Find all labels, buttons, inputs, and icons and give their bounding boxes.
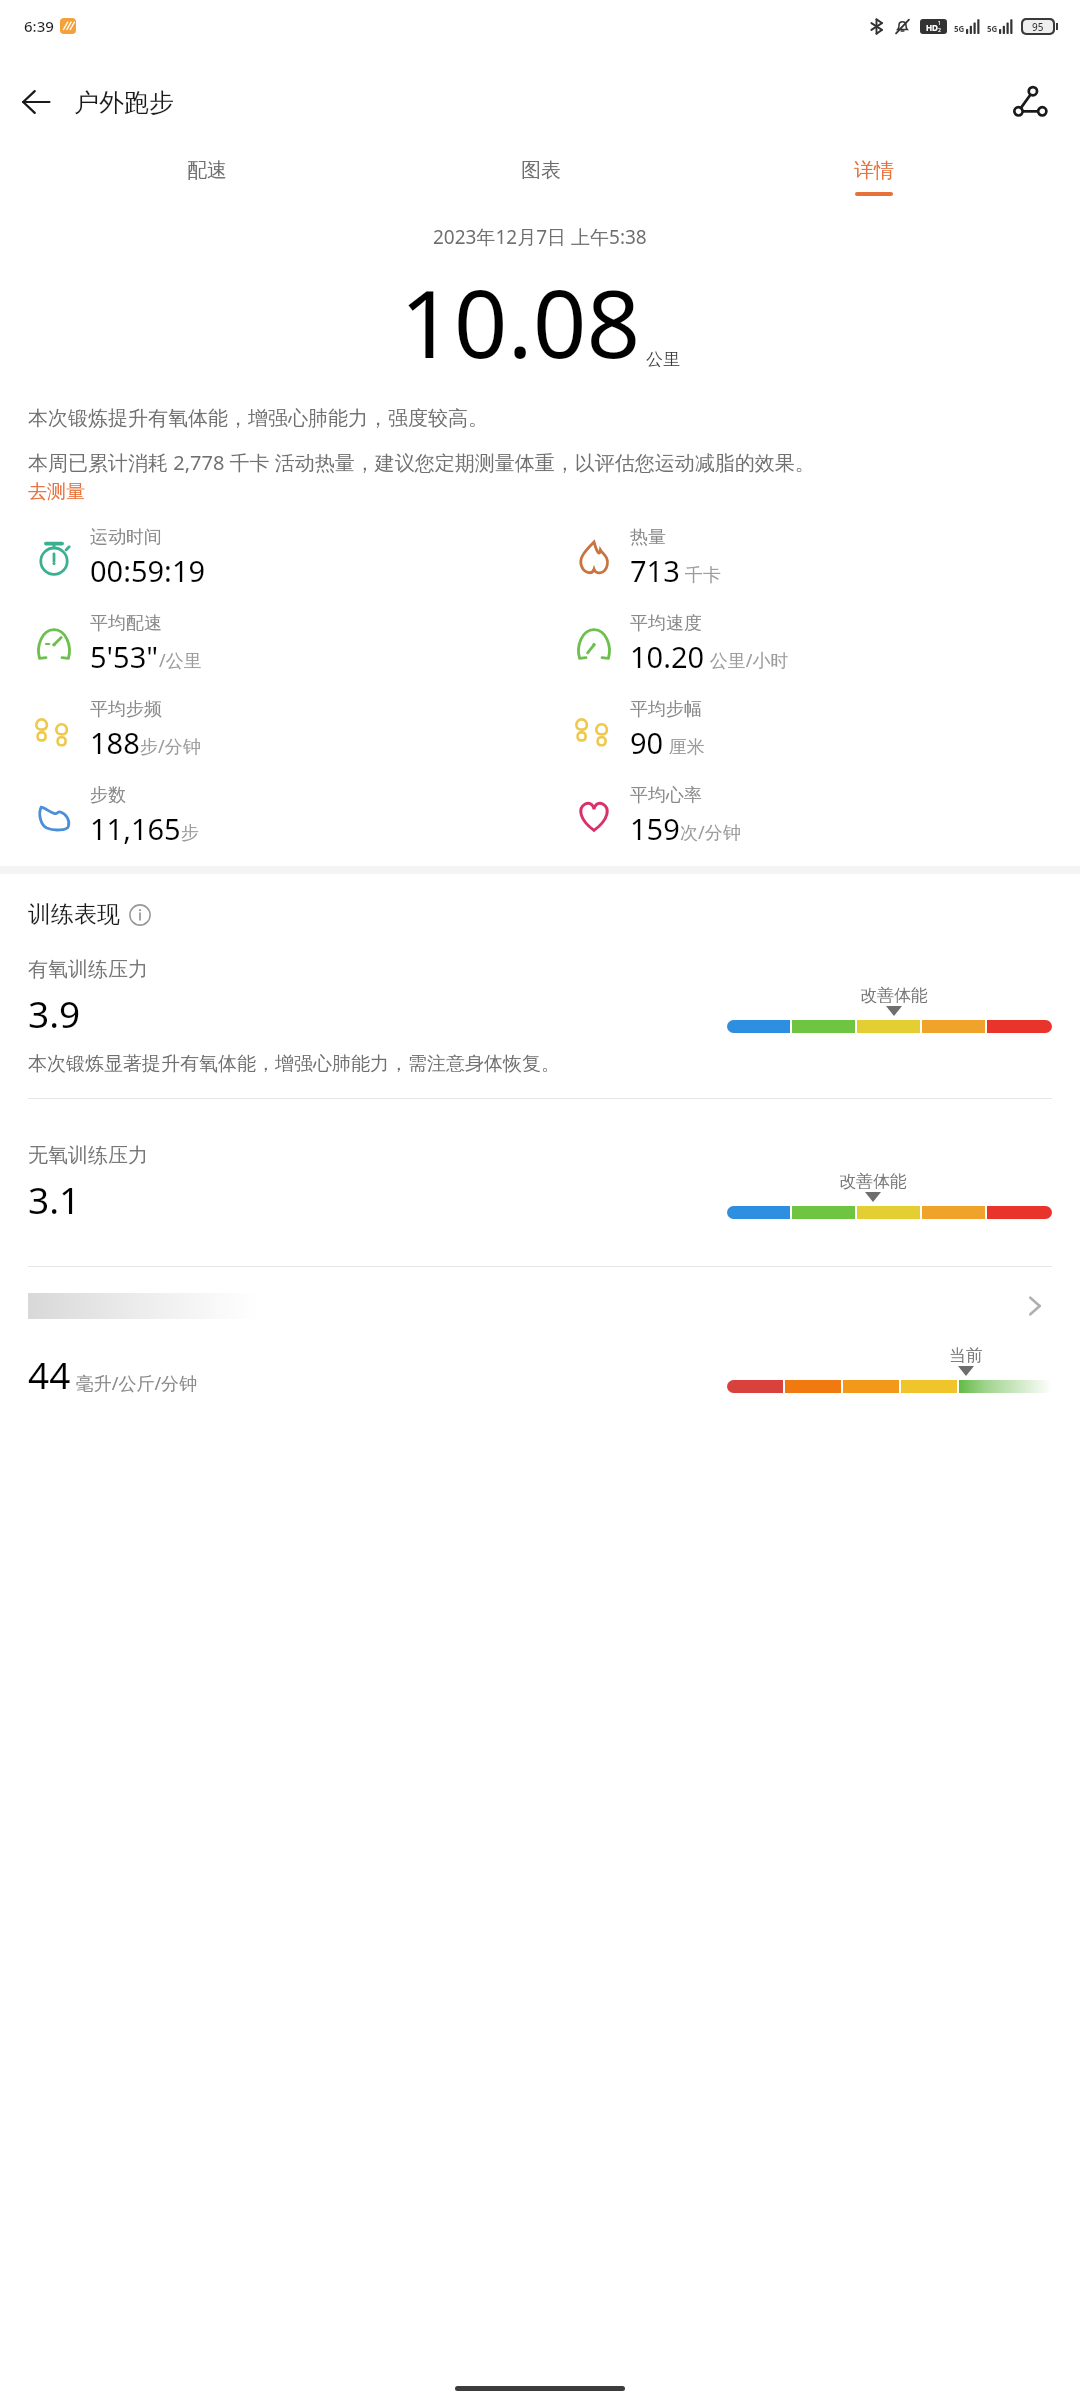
button[interactable]: 更多: [0, 1293, 1080, 1319]
staticText: 10.08: [400, 258, 641, 386]
button[interactable]: 平均配速: [0, 612, 540, 676]
staticText: 6:39: [24, 16, 54, 36]
staticText: 平均配速: [90, 612, 162, 635]
button[interactable]: 平均速度: [540, 612, 1080, 676]
button[interactable]: 返回: [0, 66, 72, 138]
staticText: 159: [630, 809, 680, 848]
staticText: 本次锻炼提升有氧体能，增强心肺能力，强度较高。: [28, 406, 488, 431]
button[interactable]: 详情: [707, 152, 1040, 202]
staticText: 5G: [987, 23, 998, 34]
staticText: 本周已累计消耗 2,778 千卡 活动热量，建议您定期测量体重，以评估您运动减脂…: [28, 449, 815, 476]
staticText: 公里: [646, 349, 680, 370]
staticText: 1: [938, 20, 941, 27]
staticText: 步: [181, 822, 199, 845]
staticText: 毫升/公斤/分钟: [71, 1371, 198, 1396]
button[interactable]: 去测量: [28, 480, 85, 504]
staticText: 训练表现: [28, 900, 120, 929]
button[interactable]: 图表: [374, 152, 707, 202]
staticText: 当前: [949, 1345, 983, 1366]
staticText: 90: [630, 723, 664, 762]
staticText: 平均步频: [90, 698, 162, 721]
button[interactable]: 运动时间: [0, 526, 540, 590]
staticText: 平均步幅: [630, 698, 702, 721]
staticText: 无氧训练压力: [28, 1143, 148, 1168]
button[interactable]: 配速: [40, 152, 374, 202]
staticText: 去测量: [28, 480, 85, 504]
button[interactable]: 平均心率: [540, 784, 1080, 848]
staticText: 44: [28, 1349, 71, 1399]
staticText: 5G: [954, 23, 965, 34]
staticText: 11,165: [90, 809, 181, 848]
staticText: 95: [1032, 20, 1044, 33]
button[interactable]: 训练表现: [28, 900, 151, 929]
staticText: 平均心率: [630, 784, 702, 807]
staticText: 户外跑步: [74, 87, 174, 118]
staticText: 713: [630, 551, 680, 590]
button[interactable]: 分享: [998, 70, 1062, 134]
staticText: 2023年12月7日 上午5:38: [433, 224, 647, 250]
staticText: 厘米: [664, 734, 705, 759]
button[interactable]: 平均步频: [0, 698, 540, 762]
staticText: 改善体能: [839, 1171, 907, 1192]
staticText: /公里: [159, 648, 202, 673]
staticText: 详情: [854, 158, 894, 183]
staticText: 配速: [187, 158, 227, 183]
staticText: 图表: [521, 158, 561, 183]
button[interactable]: 平均步幅: [540, 698, 1080, 762]
staticText: 次/分钟: [680, 820, 741, 845]
button[interactable]: 步数: [0, 784, 540, 848]
staticText: 公里/小时: [705, 648, 789, 673]
button[interactable]: 无氧训练压力: [0, 1143, 1080, 1224]
staticText: 本次锻炼显著提升有氧体能，增强心肺能力，需注意身体恢复。: [28, 1052, 560, 1076]
staticText: 188: [90, 723, 140, 762]
staticText: HD: [926, 22, 938, 33]
staticText: 00:59:19: [90, 551, 206, 590]
staticText: 10.20: [630, 637, 705, 676]
staticText: 3.9: [28, 988, 81, 1038]
staticText: 运动时间: [90, 526, 162, 549]
staticText: 步/分钟: [140, 734, 201, 759]
button[interactable]: 有氧训练压力: [0, 957, 1080, 1038]
staticText: 有氧训练压力: [28, 957, 148, 982]
staticText: 热量: [630, 526, 666, 549]
staticText: 改善体能: [860, 985, 928, 1006]
button[interactable]: 热量: [540, 526, 1080, 590]
staticText: 平均速度: [630, 612, 702, 635]
staticText: 3.1: [28, 1174, 81, 1224]
staticText: 5'53": [90, 637, 159, 676]
staticText: 步数: [90, 784, 126, 807]
staticText: 千卡: [680, 562, 721, 587]
other: 更多: [1022, 1293, 1048, 1319]
staticText: 2: [938, 27, 941, 34]
